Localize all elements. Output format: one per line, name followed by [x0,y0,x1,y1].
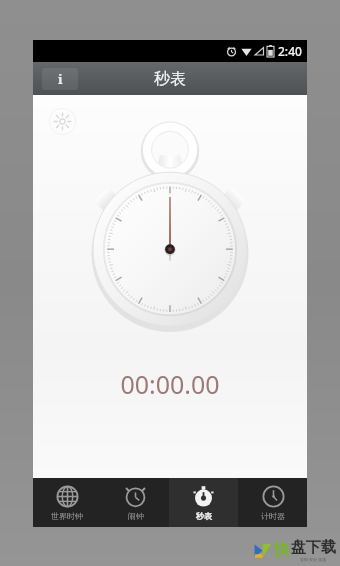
staticText: 秒表 [154,69,186,89]
staticText: 闹钟 [128,511,144,521]
staticText: i [58,70,63,88]
staticText: 00:00.00 [120,367,220,401]
staticText: 计时器 [261,511,285,521]
staticText: 秒表 [196,511,212,521]
staticText: 快 [274,540,290,560]
staticText: 导航·安全·高速 [300,557,327,562]
button[interactable]: 计时器 [238,478,307,527]
button[interactable]: Brightness [49,108,76,135]
button[interactable]: 世界时钟 [33,478,101,527]
staticText: 盘下载 [291,538,336,557]
staticText: 世界时钟 [51,511,83,521]
button[interactable]: 闹钟 [101,478,169,527]
button[interactable]: Info [42,68,78,90]
button[interactable]: 秒表 [169,478,238,527]
staticText: 2:40 [278,43,302,59]
